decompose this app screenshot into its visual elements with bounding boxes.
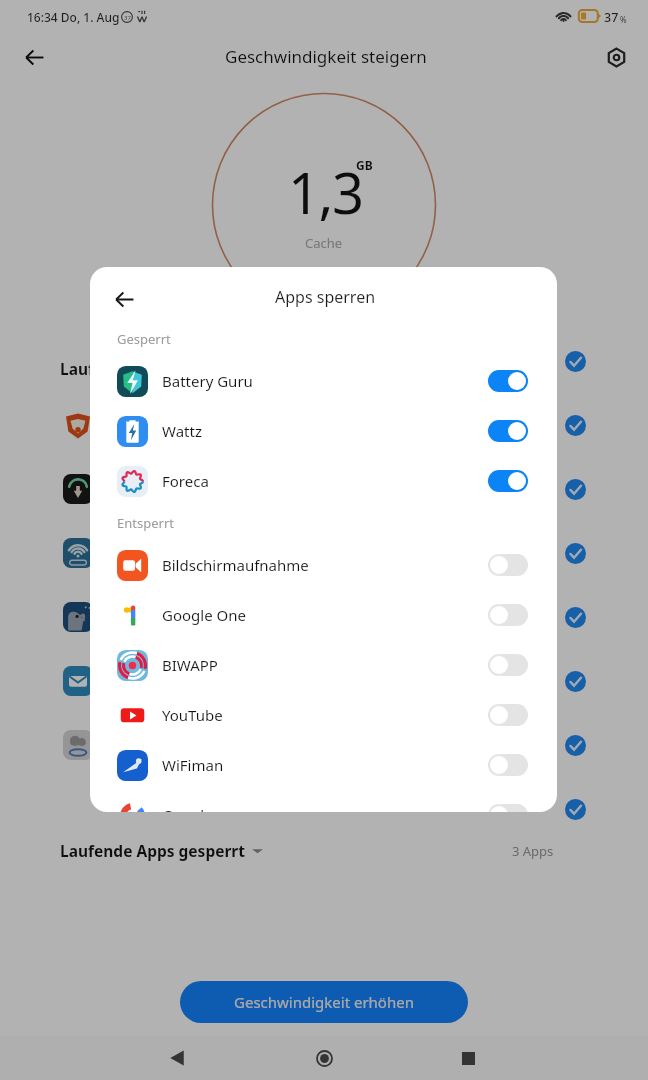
- button[interactable]: Recents: [446, 1036, 490, 1080]
- button[interactable]: Off: [488, 754, 528, 776]
- staticText: 16:34 Do, 1. Aug: [27, 9, 120, 25]
- staticText: WiFiman: [162, 755, 224, 775]
- button[interactable]: Off: [488, 704, 528, 726]
- button[interactable]: Foreca: [90, 456, 557, 506]
- staticText: Apps sperren: [275, 286, 376, 308]
- staticText: Google One: [162, 605, 246, 625]
- staticText: 3 Apps: [512, 842, 554, 860]
- button[interactable]: Off: [488, 654, 528, 676]
- staticText: YouTube: [162, 705, 223, 725]
- staticText: Laufende Apps: [60, 358, 175, 379]
- button[interactable]: BIWAPP: [90, 640, 557, 690]
- button[interactable]: Back: [107, 282, 141, 316]
- button[interactable]: Settings: [600, 41, 632, 73]
- button[interactable]: Off: [488, 554, 528, 576]
- button[interactable]: Battery Guru: [90, 356, 557, 406]
- staticText: Entsperrt: [117, 514, 174, 532]
- button[interactable]: On: [488, 470, 528, 492]
- staticText: Battery Guru: [162, 371, 253, 391]
- staticText: BIWAPP: [162, 655, 218, 675]
- button[interactable]: Google One: [90, 590, 557, 640]
- staticText: Cache: [305, 234, 343, 252]
- button[interactable]: WiFiman: [90, 740, 557, 790]
- staticText: Google: [162, 805, 213, 812]
- staticText: 37: [124, 14, 131, 22]
- staticText: GB: [356, 157, 373, 173]
- staticText: Laufende Apps gesperrt: [60, 840, 246, 861]
- button[interactable]: On: [488, 370, 528, 392]
- staticText: Bildschirmaufnahme: [162, 555, 309, 575]
- staticText: Gesperrt: [117, 330, 171, 348]
- button[interactable]: Off: [488, 804, 528, 812]
- button[interactable]: Wattz: [90, 406, 557, 456]
- staticText: Wattz: [162, 421, 202, 441]
- staticText: %: [620, 14, 627, 25]
- button[interactable]: Geschwindigkeit erhöhen: [180, 981, 468, 1023]
- staticText: Foreca: [162, 471, 209, 491]
- staticText: 1,3: [288, 154, 363, 230]
- button[interactable]: Back: [17, 40, 51, 74]
- staticText: Geschwindigkeit steigern: [225, 45, 427, 68]
- button[interactable]: YouTube: [90, 690, 557, 740]
- button[interactable]: Bildschirmaufnahme: [90, 540, 557, 590]
- button[interactable]: Home: [302, 1036, 346, 1080]
- staticText: Geschwindigkeit erhöhen: [234, 992, 414, 1012]
- staticText: 37: [604, 9, 619, 26]
- button[interactable]: Google: [90, 790, 557, 812]
- button[interactable]: Off: [488, 604, 528, 626]
- button[interactable]: Back: [155, 1036, 199, 1080]
- button[interactable]: On: [488, 420, 528, 442]
